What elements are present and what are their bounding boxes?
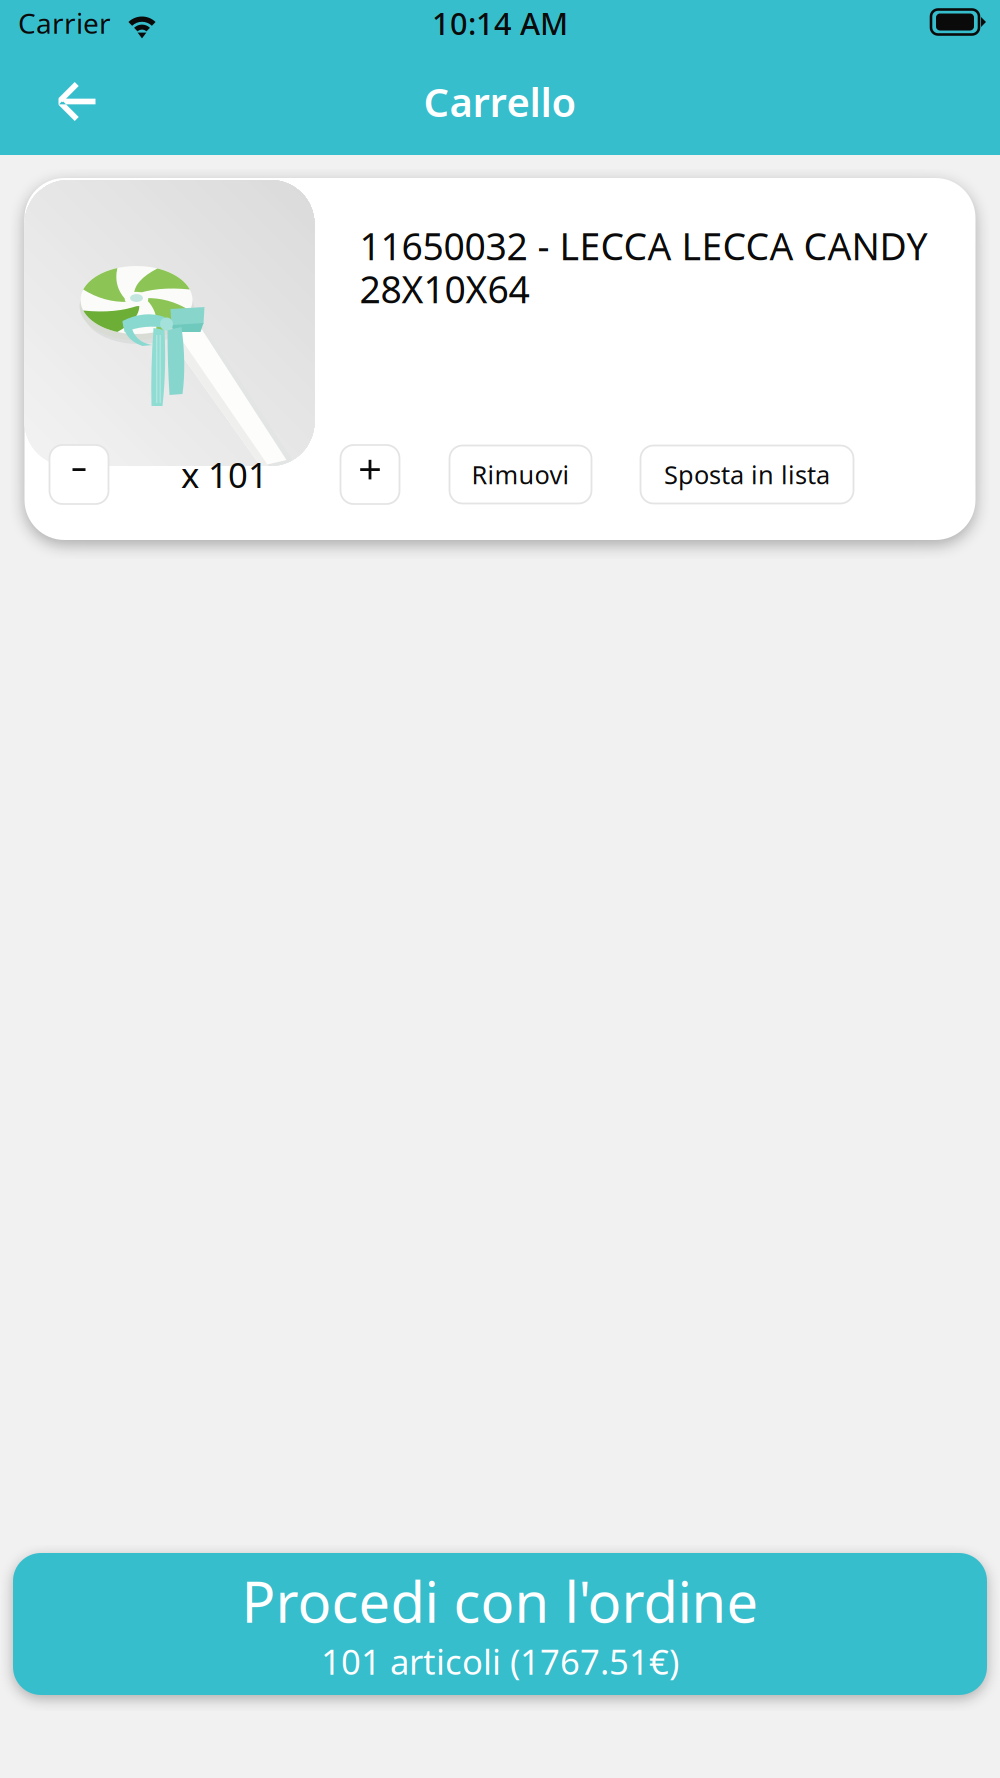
button[interactable]: Increase quantity bbox=[340, 445, 399, 504]
staticText: Sposta in lista bbox=[664, 458, 830, 491]
staticText: 101 articoli (1767.51€) bbox=[321, 1638, 679, 1684]
staticText: 28X10X64 bbox=[359, 264, 529, 314]
button[interactable]: Decrease quantity bbox=[49, 445, 108, 504]
staticText: Rimuovi bbox=[471, 458, 569, 491]
staticText: Carrello bbox=[423, 75, 576, 128]
button[interactable]: Rimuovi bbox=[449, 445, 591, 503]
button[interactable]: Sposta in lista bbox=[640, 445, 853, 503]
staticText: 11650032 - LECCA LECCA CANDY bbox=[359, 221, 927, 271]
button[interactable]: Back bbox=[20, 57, 132, 145]
button[interactable]: Procedi con l'ordine bbox=[13, 1553, 987, 1695]
staticText: x 101 bbox=[181, 451, 268, 497]
staticText: Procedi con l'ordine bbox=[241, 1564, 758, 1638]
staticText: 10:14 AM bbox=[432, 3, 568, 43]
staticText: Carrier bbox=[18, 4, 111, 42]
